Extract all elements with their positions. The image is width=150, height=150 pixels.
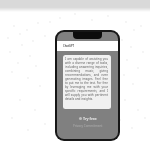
button[interactable]: Try free xyxy=(76,115,100,122)
staticText: I am capable of assisting you with a div… xyxy=(65,57,108,101)
staticText: Privacy Commitment xyxy=(73,124,103,128)
staticText: Try free xyxy=(83,116,97,121)
staticText: ChatGPT xyxy=(63,44,75,48)
